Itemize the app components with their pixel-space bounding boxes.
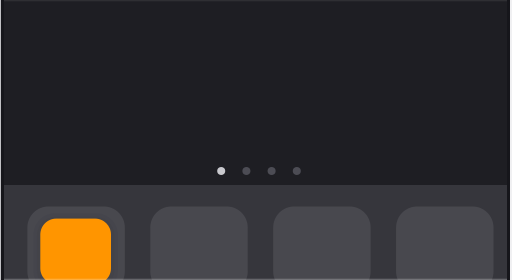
- button[interactable]: Page 2: [242, 167, 250, 175]
- button[interactable]: Page 3: [268, 167, 276, 175]
- button[interactable]: Selected app: [40, 219, 111, 280]
- button[interactable]: Dock app 2: [150, 206, 248, 280]
- button[interactable]: Page 4: [293, 167, 301, 175]
- button[interactable]: Dock app 4: [396, 206, 493, 280]
- button[interactable]: Dock app 1: [27, 206, 125, 280]
- button[interactable]: Dock app 3: [273, 206, 371, 280]
- button[interactable]: Page 1: [217, 167, 225, 175]
